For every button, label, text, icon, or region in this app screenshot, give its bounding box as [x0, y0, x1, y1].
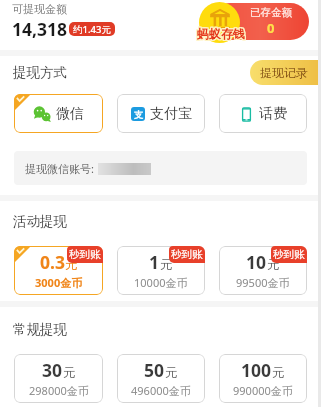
button[interactable]: 话费	[219, 94, 307, 133]
staticText: 蚂蚁存钱	[197, 25, 245, 40]
staticText: 支	[134, 109, 143, 120]
staticText: 50	[144, 358, 165, 382]
staticText: 14,318	[12, 17, 68, 41]
staticText: 元	[65, 257, 78, 273]
staticText: 支付宝	[150, 105, 192, 123]
staticText: 提现微信账号:	[25, 161, 94, 176]
staticText: 话费	[259, 105, 287, 123]
staticText: 蚂蚁存钱	[196, 25, 244, 40]
staticText: 常规提现	[13, 321, 67, 338]
staticText: 约1.43元	[73, 23, 111, 36]
staticText: 10000金币	[134, 275, 188, 290]
button[interactable]: 已存金额	[199, 2, 309, 43]
button[interactable]: 30	[14, 354, 103, 403]
staticText: 元	[160, 257, 173, 273]
staticText: 蚂蚁存钱	[197, 26, 245, 41]
staticText: 3000金币	[35, 275, 83, 290]
staticText: 蚂蚁存钱	[198, 26, 246, 41]
staticText: 秒到账	[69, 248, 101, 261]
staticText: 30	[42, 358, 63, 382]
staticText: 99500金币	[236, 275, 290, 290]
button[interactable]: 10	[219, 246, 307, 295]
staticText: 微信	[56, 105, 84, 123]
staticText: 496000金币	[131, 383, 191, 398]
staticText: 元	[63, 365, 76, 381]
staticText: 0.3	[40, 250, 65, 274]
staticText: 蚂蚁存钱	[196, 26, 244, 41]
button[interactable]: 1	[117, 246, 205, 295]
staticText: 提现记录	[260, 65, 308, 80]
staticText: 1	[149, 250, 160, 274]
staticText: 蚂蚁存钱	[196, 27, 244, 42]
staticText: 提现方式	[13, 64, 67, 81]
staticText: 可提现金额	[12, 2, 67, 16]
staticText: 100	[241, 358, 272, 382]
staticText: 990000金币	[233, 383, 293, 398]
staticText: 0	[267, 19, 275, 37]
staticText: 10	[246, 250, 267, 274]
staticText: 元	[267, 257, 280, 273]
staticText: 秒到账	[273, 248, 305, 261]
staticText: 蚂蚁存钱	[198, 25, 246, 40]
staticText: 已存金额	[250, 6, 292, 19]
staticText: 蚂蚁存钱	[198, 27, 246, 42]
button[interactable]: 提现记录	[250, 60, 321, 85]
staticText: 298000金币	[29, 383, 89, 398]
button[interactable]: 支	[117, 94, 205, 133]
staticText: 元	[165, 365, 178, 381]
staticText: 秒到账	[171, 248, 203, 261]
button[interactable]: 50	[117, 354, 205, 403]
button[interactable]: 0.3	[14, 246, 103, 295]
staticText: 活动提现	[13, 213, 67, 230]
staticText: 元	[272, 365, 285, 381]
button[interactable]: 微信	[14, 94, 103, 133]
button[interactable]: 100	[219, 354, 307, 403]
staticText: 蚂蚁存钱	[197, 27, 245, 42]
